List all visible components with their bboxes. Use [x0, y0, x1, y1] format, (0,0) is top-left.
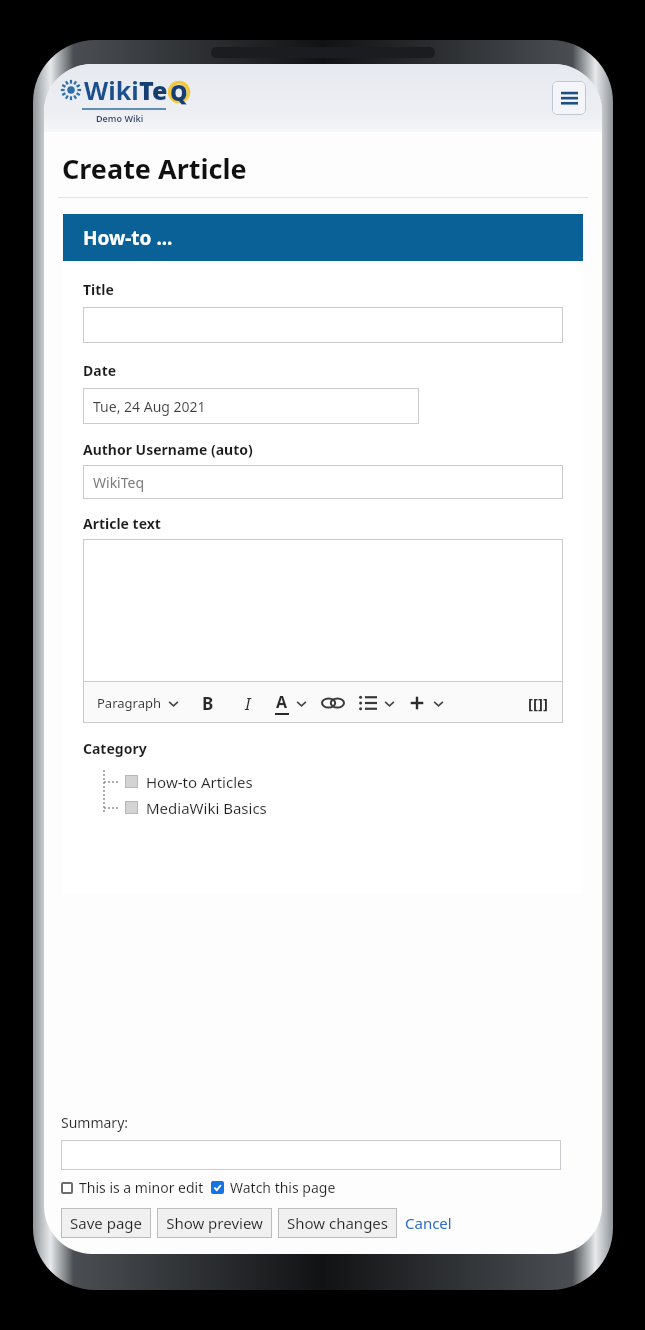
staticText: Title: [83, 280, 114, 299]
button[interactable]: Italic: [235, 690, 261, 716]
staticText: WikiTeq: [93, 473, 145, 492]
staticText: Create Article: [62, 150, 247, 187]
staticText: Tue, 24 Aug 2021: [93, 397, 206, 416]
staticText: Te: [139, 73, 168, 107]
button[interactable]: WikiTeq: [83, 465, 563, 499]
button[interactable]: [61, 1140, 561, 1170]
staticText: Save page: [70, 1213, 142, 1233]
button[interactable]: Watch this page: [211, 1178, 336, 1197]
button[interactable]: Show changes: [278, 1208, 397, 1238]
staticText: This is a minor edit: [79, 1178, 204, 1197]
button[interactable]: Save page: [61, 1208, 151, 1238]
button[interactable]: Bold: [195, 690, 221, 716]
button[interactable]: [83, 307, 563, 343]
button[interactable]: Open navigation menu: [552, 81, 586, 115]
staticText: MediaWiki Basics: [146, 798, 267, 818]
button[interactable]: List: [359, 694, 395, 712]
staticText: How-to ...: [83, 225, 173, 251]
button[interactable]: How-to Articles: [125, 770, 253, 793]
staticText: [[]]: [528, 693, 548, 713]
staticText: Cancel: [405, 1213, 452, 1233]
button[interactable]: Paragraph: [95, 694, 181, 712]
staticText: I: [245, 692, 251, 715]
staticText: Date: [83, 361, 117, 380]
button[interactable]: This is a minor edit: [61, 1178, 204, 1197]
staticText: A: [276, 691, 288, 713]
staticText: Author Username (auto): [83, 440, 253, 459]
staticText: Demo Wiki: [96, 112, 144, 124]
staticText: Watch this page: [230, 1178, 336, 1197]
button[interactable]: Show preview: [157, 1208, 272, 1238]
button[interactable]: Cancel: [405, 1213, 452, 1233]
staticText: Summary:: [61, 1113, 129, 1132]
staticText: Paragraph: [97, 694, 161, 712]
button[interactable]: Insert link: [320, 690, 346, 716]
button[interactable]: [83, 539, 563, 681]
staticText: Show changes: [287, 1213, 388, 1233]
staticText: Article text: [83, 514, 161, 533]
staticText: How-to Articles: [146, 772, 253, 792]
button[interactable]: Template: [525, 690, 551, 716]
staticText: Category: [83, 739, 147, 758]
button[interactable]: Insert: [408, 694, 444, 712]
button[interactable]: Text style: [275, 691, 307, 715]
staticText: B: [202, 692, 214, 715]
button[interactable]: MediaWiki Basics: [125, 796, 267, 819]
button[interactable]: Tue, 24 Aug 2021: [83, 388, 419, 424]
staticText: Q: [170, 77, 188, 107]
staticText: Show preview: [166, 1213, 263, 1233]
staticText: Wiki: [84, 73, 139, 107]
